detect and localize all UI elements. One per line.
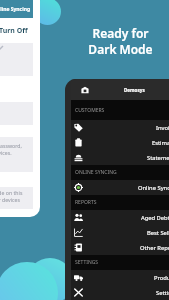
- staticText: Estimates: [152, 139, 169, 147]
- staticText: on other devices.: [0, 149, 12, 156]
- button[interactable]: Settings: [71, 285, 169, 300]
- staticText: Enter your password,: [0, 142, 22, 149]
- staticText: CUSTOMERS: [75, 107, 105, 114]
- staticText: ONLINE SYNCING: [75, 169, 117, 176]
- staticText: Changes made on this: [0, 189, 23, 196]
- staticText: Other Reports: [140, 244, 169, 252]
- button[interactable]: Menu: [74, 79, 95, 100]
- staticText: Ready for: [92, 25, 149, 41]
- button[interactable]: Estimates: [71, 135, 169, 150]
- staticText: Best Sellers: [147, 229, 169, 237]
- button[interactable]: Aged Debtors: [71, 210, 169, 225]
- button[interactable]: Online Syncing: [71, 180, 169, 195]
- button[interactable]: Statements: [71, 150, 169, 165]
- staticText: Online Syncing: [0, 6, 31, 13]
- button[interactable]: Products: [71, 270, 169, 285]
- staticText: Turn Off: [0, 26, 28, 36]
- staticText: Dark Mode: [88, 41, 153, 57]
- staticText: Online Syncing: [138, 184, 169, 192]
- staticText: Products: [154, 274, 169, 282]
- staticText: Aged Debtors: [141, 214, 169, 222]
- staticText: Statements: [147, 154, 169, 162]
- staticText: Settings: [156, 289, 169, 297]
- staticText: REPORTS: [75, 199, 97, 206]
- staticText: Demosys: [124, 87, 145, 93]
- staticText: Invoices: [156, 124, 169, 132]
- button[interactable]: Best Sellers: [71, 225, 169, 240]
- staticText: ine and other devices: [0, 196, 20, 203]
- staticText: SETTINGS: [75, 259, 99, 266]
- button[interactable]: Invoices: [71, 120, 169, 135]
- button[interactable]: Other Reports: [71, 240, 169, 255]
